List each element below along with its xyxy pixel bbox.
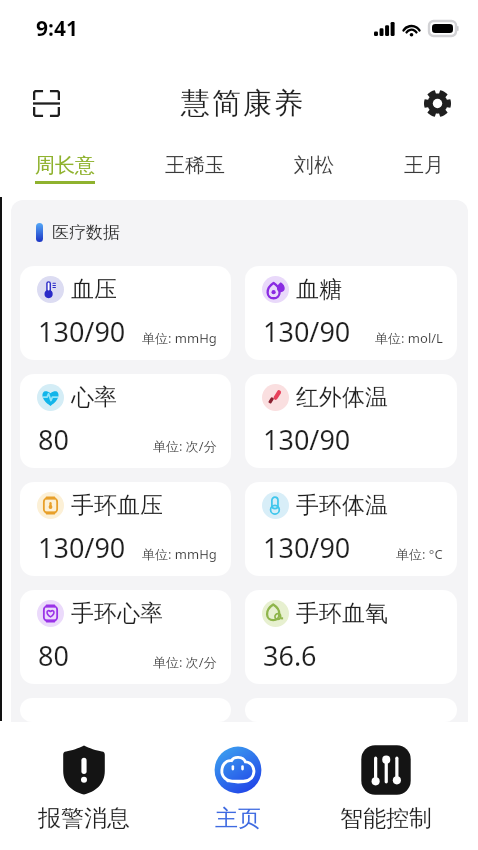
staticText: 80	[38, 637, 69, 674]
staticText: 红外体温	[296, 383, 388, 412]
button[interactable]: 手环血氧	[245, 590, 457, 684]
staticText: 刘松	[294, 153, 334, 178]
staticText: 手环血氧	[296, 599, 388, 628]
staticText: 130/90	[263, 421, 351, 458]
button[interactable]: Scan	[22, 79, 70, 127]
button[interactable]: 血压	[20, 266, 231, 360]
button[interactable]: 报警消息	[19, 744, 149, 850]
button[interactable]: 血糖	[245, 266, 457, 360]
staticText: 36.6	[263, 637, 317, 674]
staticText: 单位: 次/分	[153, 437, 217, 455]
button[interactable]: 王稀玉	[165, 146, 225, 200]
button[interactable]: 王月	[404, 146, 444, 200]
staticText: 手环体温	[296, 491, 388, 520]
staticText: 9:41	[36, 14, 78, 43]
staticText: 手环心率	[71, 599, 163, 628]
staticText: 心率	[71, 383, 117, 412]
staticText: 血糖	[296, 275, 342, 304]
button[interactable]: 手环体温	[245, 482, 457, 576]
staticText: 报警消息	[38, 804, 130, 833]
staticText: 130/90	[263, 529, 351, 566]
staticText: 80	[38, 421, 69, 458]
staticText: 130/90	[38, 529, 126, 566]
button[interactable]: 周长意	[35, 146, 95, 200]
staticText: 慧简康养	[180, 85, 304, 122]
staticText: 单位: mol/L	[375, 329, 443, 347]
staticText: 单位: 次/分	[153, 653, 217, 671]
button[interactable]: 手环心率	[20, 590, 231, 684]
staticText: 医疗数据	[52, 222, 120, 243]
staticText: 王月	[404, 153, 444, 178]
button[interactable]: Settings	[416, 82, 458, 124]
button[interactable]: 主页	[173, 744, 303, 850]
staticText: 130/90	[263, 313, 351, 350]
button[interactable]: 刘松	[294, 146, 334, 200]
button[interactable]: 红外体温	[245, 374, 457, 468]
button[interactable]: 心率	[20, 374, 231, 468]
staticText: 130/90	[38, 313, 126, 350]
staticText: 手环血压	[71, 491, 163, 520]
staticText: 血压	[71, 275, 117, 304]
button[interactable]: 智能控制	[321, 744, 451, 850]
staticText: 智能控制	[340, 804, 432, 833]
staticText: 单位: °C	[396, 545, 443, 563]
staticText: 王稀玉	[165, 153, 225, 178]
staticText: 单位: mmHg	[142, 545, 217, 563]
button[interactable]: 手环血压	[20, 482, 231, 576]
staticText: 周长意	[35, 153, 95, 178]
staticText: 单位: mmHg	[142, 329, 217, 347]
staticText: 主页	[215, 804, 261, 833]
